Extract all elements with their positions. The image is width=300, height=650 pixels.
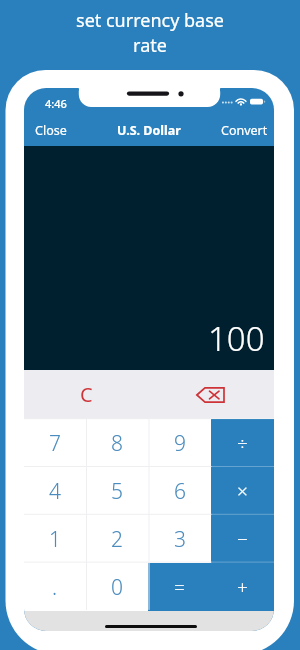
staticText: Close [35,122,67,139]
staticText: 5 [111,477,123,506]
button[interactable]: + [211,563,274,611]
button[interactable]: − [211,515,274,563]
staticText: C [80,381,93,408]
button[interactable]: 0 [86,563,148,611]
staticText: 2 [111,525,123,554]
staticText: − [237,526,248,552]
button[interactable]: 3 [148,515,211,563]
button[interactable]: Close [24,110,78,150]
staticText: set currency base [76,8,224,33]
button[interactable]: C [24,370,149,419]
staticText: 7 [49,429,61,458]
staticText: 4:46 [45,96,67,111]
button[interactable]: × [211,467,274,515]
button[interactable]: 7 [24,419,86,467]
staticText: 6 [174,477,186,506]
button[interactable]: 5 [86,467,148,515]
staticText: Convert [221,122,268,139]
staticText: 0 [111,573,123,602]
staticText: 1 [49,525,61,554]
button[interactable]: 4 [24,467,86,515]
button[interactable]: 2 [86,515,148,563]
staticText: + [237,574,248,600]
staticText: 4 [49,477,61,506]
staticText: = [174,574,185,600]
staticText: U.S. Dollar [117,122,181,139]
button[interactable]: 8 [86,419,148,467]
staticText: 8 [111,429,123,458]
button[interactable]: . [24,563,86,611]
button[interactable]: 1 [24,515,86,563]
staticText: . [52,573,58,602]
staticText: 100 [208,316,265,361]
button[interactable]: 6 [148,467,211,515]
button[interactable]: 9 [148,419,211,467]
button[interactable]: Backspace [149,370,274,419]
staticText: rate [133,33,167,58]
staticText: 9 [174,429,186,458]
button[interactable]: ÷ [211,419,274,467]
staticText: ÷ [237,430,248,456]
button[interactable]: Convert [215,110,274,150]
staticText: × [237,478,248,504]
button[interactable]: = [148,563,211,611]
staticText: 3 [174,525,186,554]
